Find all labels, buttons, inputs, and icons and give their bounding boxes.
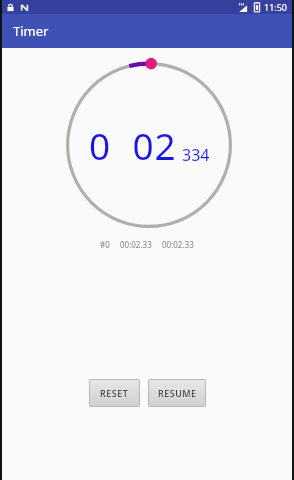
button[interactable]: RESUME xyxy=(148,379,206,407)
button[interactable]: RESET xyxy=(89,379,140,407)
staticText: 00:02.33 xyxy=(162,239,194,250)
staticText: #0 xyxy=(100,239,110,250)
staticText: Timer xyxy=(13,22,49,40)
other: LTE signal strength xyxy=(239,3,250,12)
staticText: 11:50 xyxy=(264,1,288,13)
staticText: 334 xyxy=(182,144,210,166)
other: Secure lock notification xyxy=(6,3,15,12)
staticText: 00:02.33 xyxy=(120,239,152,250)
staticText: 0 02 xyxy=(89,120,177,170)
other: Battery level xyxy=(254,2,260,12)
staticText: RESET xyxy=(100,387,129,399)
staticText: RESUME xyxy=(158,387,197,399)
other: NFC enabled xyxy=(20,3,29,12)
